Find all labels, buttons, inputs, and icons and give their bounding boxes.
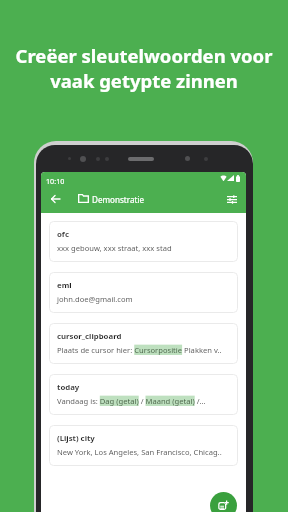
staticText: New York, Los Angeles, San Francisco, Ch…: [57, 447, 238, 457]
button[interactable]: (Lijst) city: [49, 425, 238, 466]
staticText: ofc: [57, 229, 69, 240]
staticText: john.doe@gmail.com: [57, 294, 238, 304]
button[interactable]: Navigate up: [45, 189, 65, 209]
staticText: Plaats de cursor hier: Cursorpositie Pla…: [57, 345, 238, 355]
staticText: Creëer sleutelwoorden voor vaak getypte …: [8, 43, 280, 93]
staticText: xxx gebouw, xxx straat, xxx stad: [57, 243, 238, 253]
staticText: today: [57, 382, 80, 393]
staticText: Vandaag is: Dag (getal) / Maand (getal) …: [57, 396, 238, 406]
button[interactable]: today: [49, 374, 238, 415]
staticText: 10:10: [46, 176, 65, 186]
staticText: Demonstratie: [92, 194, 145, 205]
button[interactable]: eml: [49, 272, 238, 313]
staticText: eml: [57, 280, 72, 291]
staticText: (Lijst) city: [57, 433, 95, 444]
button[interactable]: Add phrase: [210, 492, 237, 512]
staticText: cursor_clipboard: [57, 331, 122, 342]
button[interactable]: cursor_clipboard: [49, 323, 238, 364]
button[interactable]: ofc: [49, 221, 238, 262]
button[interactable]: Settings: [222, 189, 242, 209]
